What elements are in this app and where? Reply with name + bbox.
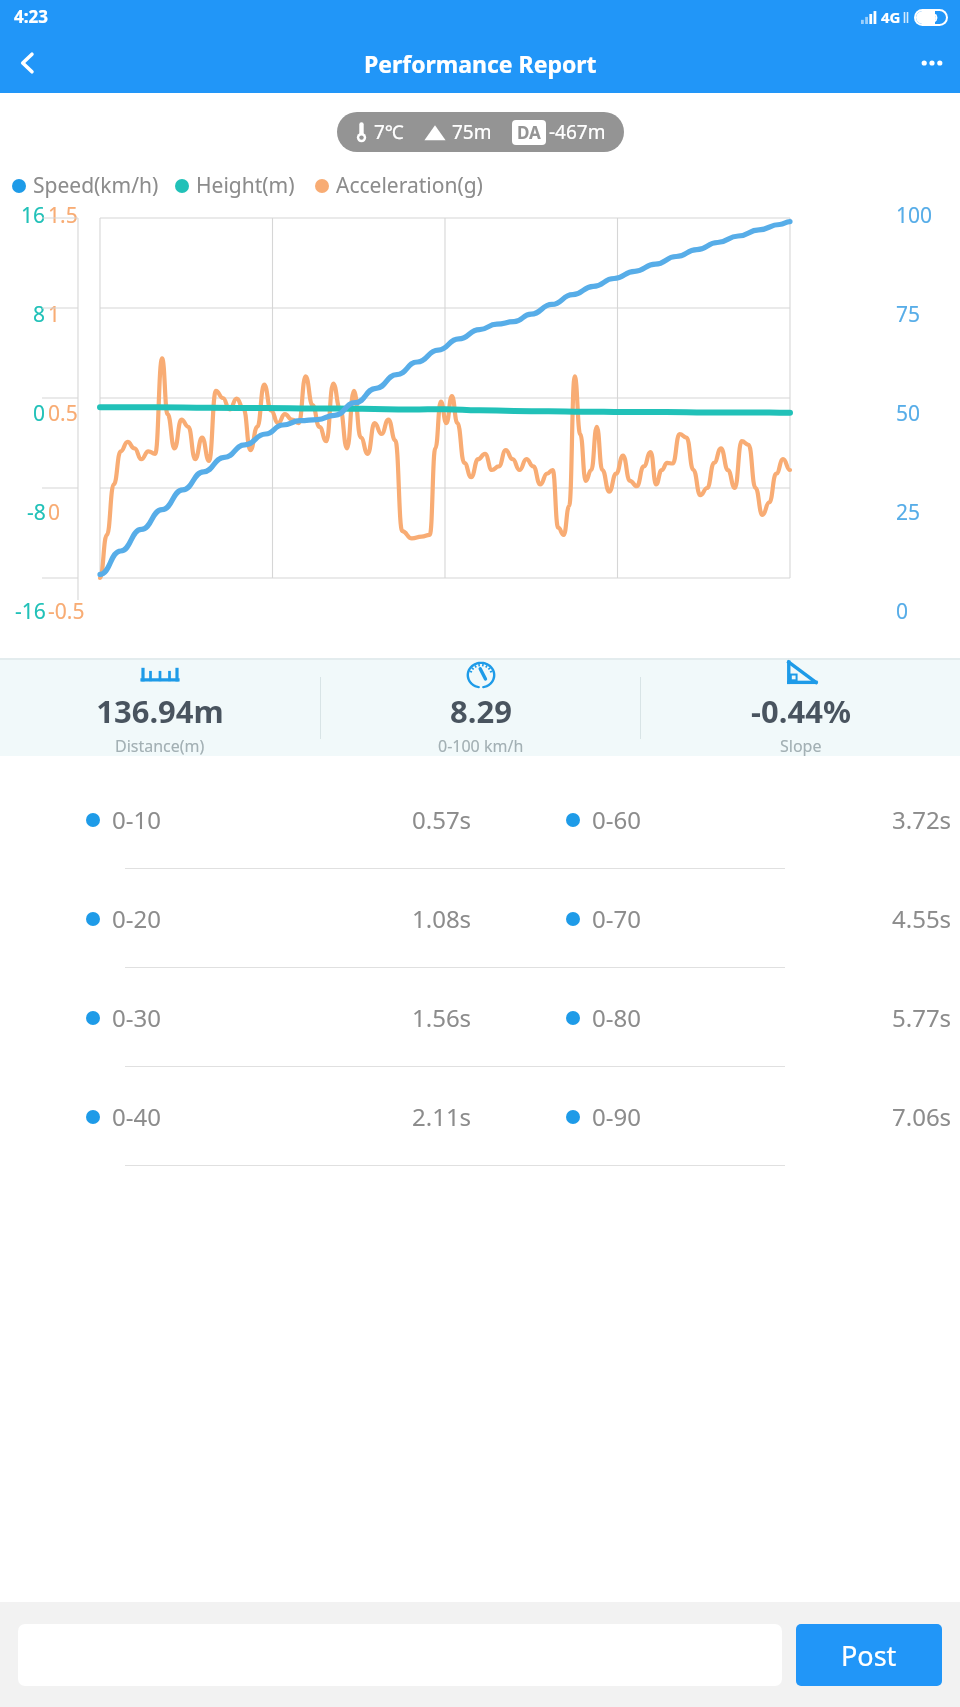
button[interactable]: 8.29 [321, 660, 640, 756]
staticText: 75m [452, 119, 492, 145]
staticText: 100 [896, 201, 933, 230]
staticText: 4G [881, 7, 901, 27]
button[interactable]: 7℃ [355, 119, 606, 145]
button[interactable]: Speed(km/h) [12, 171, 159, 200]
staticText: 8.29 [450, 690, 512, 732]
staticText: 0.5 [48, 399, 78, 428]
staticText: Height(m) [196, 171, 295, 200]
button[interactable]: 0-40 [0, 1067, 960, 1165]
staticText: 0-40 [112, 1100, 161, 1133]
staticText: 75 [896, 300, 921, 329]
staticText: Post [841, 1637, 897, 1674]
staticText: 4.55s [892, 902, 952, 935]
button[interactable]: Acceleration(g) [315, 171, 483, 200]
staticText: DA [517, 121, 541, 144]
button[interactable]: 0-20 [0, 869, 960, 967]
staticText: 5.77s [892, 1001, 952, 1034]
button[interactable]: Post [796, 1624, 942, 1686]
staticText: Speed(km/h) [33, 171, 159, 200]
staticText: 0-60 [592, 803, 641, 836]
staticText: -467m [549, 119, 606, 145]
staticText: 8 [33, 300, 46, 329]
button[interactable]: Back [0, 35, 56, 91]
staticText: 1.56s [412, 1001, 472, 1034]
staticText: 0-80 [592, 1001, 641, 1034]
staticText: 0-70 [592, 902, 641, 935]
staticText: 7℃ [374, 119, 404, 145]
staticText: 1.08s [412, 902, 472, 935]
staticText: 0-10 [112, 803, 161, 836]
staticText: 7.06s [892, 1100, 952, 1133]
staticText: Slope [780, 735, 822, 756]
staticText: 0-30 [112, 1001, 161, 1034]
staticText: -0.44% [751, 690, 851, 732]
staticText: 4:23 [14, 5, 48, 28]
staticText: -0.5 [48, 597, 85, 620]
staticText: 1 [48, 300, 61, 329]
staticText: 3.72s [892, 803, 952, 836]
button[interactable]: 0-30 [0, 968, 960, 1066]
button[interactable]: -0.44% [641, 660, 960, 756]
staticText: Distance(m) [115, 735, 205, 756]
staticText: 1.5 [48, 201, 78, 230]
staticText: 136.94m [96, 690, 224, 732]
staticText: 2.11s [412, 1100, 472, 1133]
staticText: 0 [33, 399, 46, 428]
staticText: 0 [896, 597, 909, 620]
staticText: 39 [925, 10, 938, 25]
staticText: 0-100 km/h [438, 735, 524, 756]
button[interactable]: Height(m) [175, 171, 295, 200]
staticText: -8 [27, 498, 46, 527]
staticText: 0 [48, 498, 61, 527]
staticText: 16 [21, 201, 46, 230]
staticText: 25 [896, 498, 921, 527]
staticText: Performance Report [364, 48, 597, 79]
button[interactable]: 136.94m [0, 660, 320, 756]
staticText: 50 [896, 399, 921, 428]
staticText: Acceleration(g) [336, 171, 483, 200]
staticText: 0-20 [112, 902, 161, 935]
staticText: 0.57s [412, 803, 472, 836]
button[interactable]: More options [904, 35, 960, 91]
staticText: -16 [15, 597, 46, 620]
button[interactable]: 0-10 [0, 770, 960, 868]
staticText: 0-90 [592, 1100, 641, 1133]
